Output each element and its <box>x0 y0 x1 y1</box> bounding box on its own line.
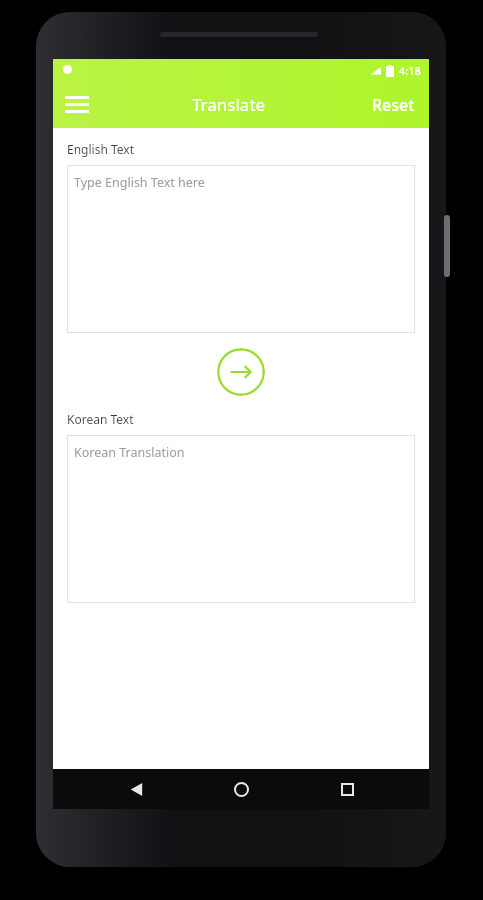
button[interactable]: Reset <box>358 81 429 128</box>
staticText: English Text <box>67 141 134 157</box>
staticText: 4:18 <box>399 63 421 78</box>
button[interactable]: Recent apps <box>324 769 370 809</box>
button[interactable]: Home <box>218 769 264 809</box>
button[interactable]: Korean Translation <box>67 435 415 603</box>
staticText: Reset <box>372 94 415 116</box>
staticText: Type English Text here <box>74 174 205 191</box>
button[interactable]: Back <box>113 769 159 809</box>
button[interactable]: Type English Text here <box>67 165 415 333</box>
staticText: Korean Text <box>67 411 134 427</box>
staticText: Translate <box>192 93 266 116</box>
button[interactable]: Translate <box>217 348 265 396</box>
button[interactable]: Open navigation menu <box>53 81 100 128</box>
staticText: Korean Translation <box>74 444 185 461</box>
